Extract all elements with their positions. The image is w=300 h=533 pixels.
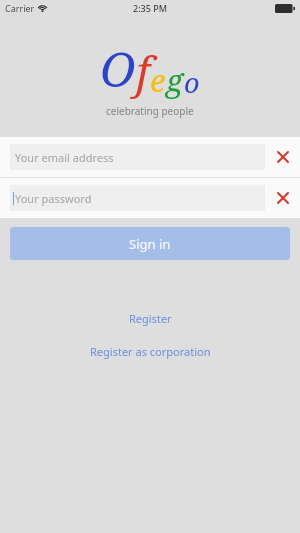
staticText: Your password [15, 191, 92, 206]
button[interactable]: Your password [0, 178, 300, 218]
button[interactable]: Register as corporation [0, 342, 300, 360]
staticText: e [150, 59, 166, 101]
staticText: Register [129, 311, 172, 326]
staticText: Sign in [129, 235, 171, 253]
staticText: g [166, 59, 184, 101]
button[interactable]: Clear Your password [265, 178, 300, 218]
staticText: o [184, 64, 200, 101]
staticText: Your email address [15, 150, 114, 165]
staticText: O [100, 36, 136, 101]
button[interactable]: Sign in [10, 227, 290, 260]
staticText: f [136, 41, 150, 101]
button[interactable]: Your email address [0, 137, 300, 177]
staticText: celebrating people [106, 104, 194, 118]
button[interactable]: Clear Your email address [265, 137, 300, 177]
staticText: 2:35 PM [133, 2, 167, 14]
staticText: Register as corporation [90, 344, 211, 359]
button[interactable]: Register [0, 309, 300, 327]
staticText: Carrier [5, 2, 35, 14]
